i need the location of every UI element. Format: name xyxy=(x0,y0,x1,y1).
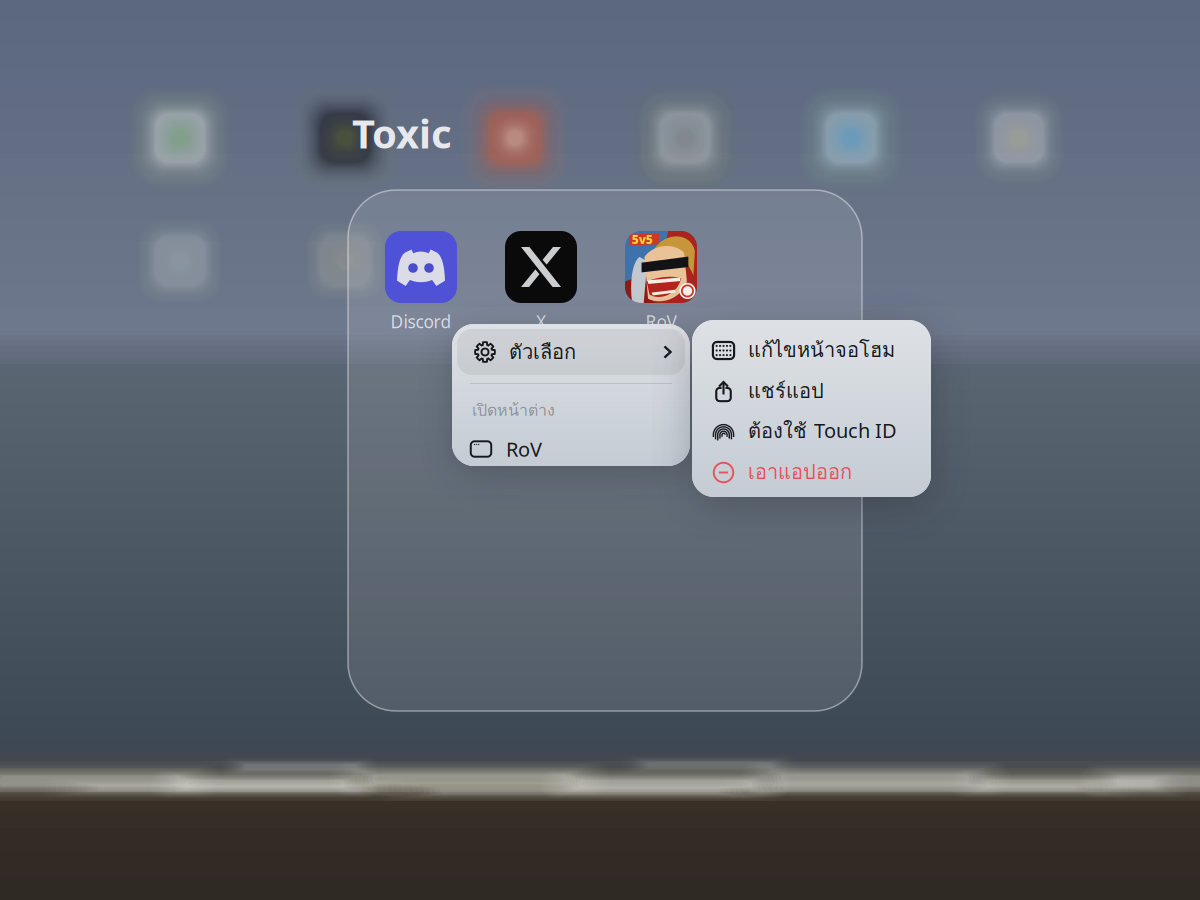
button[interactable]: แชร์แอป xyxy=(692,371,931,412)
staticText: X xyxy=(536,310,546,333)
staticText: RoV xyxy=(506,436,542,462)
staticText: แชร์แอป xyxy=(748,375,824,406)
staticText: Discord xyxy=(390,310,451,333)
staticText: เอาแอปออก xyxy=(748,456,852,487)
button[interactable]: RoV xyxy=(452,429,690,469)
staticText: เปิดหน้าต่าง xyxy=(472,398,555,422)
staticText: 5v5 xyxy=(632,231,653,247)
button[interactable]: X xyxy=(493,232,589,332)
button[interactable]: Discord xyxy=(373,232,469,332)
staticText: Toxic xyxy=(352,106,452,159)
staticText: ตัวเลือก xyxy=(509,336,576,367)
staticText: แก้ไขหน้าจอโฮม xyxy=(748,334,895,365)
button[interactable]: แก้ไขหน้าจอโฮม xyxy=(692,330,931,371)
staticText: RoV xyxy=(645,310,676,333)
staticText: ต้องใช้ Touch ID xyxy=(748,415,897,446)
button[interactable]: ตัวเลือก xyxy=(457,329,685,375)
button[interactable]: เอาแอปออก xyxy=(692,452,931,493)
button[interactable]: ต้องใช้ Touch ID xyxy=(692,411,931,452)
button[interactable]: 5v5 xyxy=(613,232,709,332)
